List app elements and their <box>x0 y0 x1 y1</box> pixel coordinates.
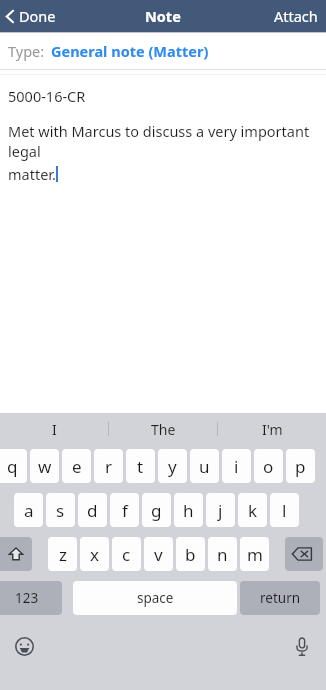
staticText: h <box>183 499 194 522</box>
button[interactable]: b <box>176 537 205 571</box>
button[interactable]: o <box>254 449 283 483</box>
button[interactable]: Shift <box>0 537 32 571</box>
staticText: e <box>72 455 82 478</box>
button[interactable]: d <box>78 493 107 527</box>
button[interactable]: I'm <box>218 413 326 445</box>
button[interactable]: Emoji <box>4 626 44 666</box>
button[interactable]: 123 <box>0 581 62 615</box>
staticText: t <box>137 455 144 478</box>
staticText: p <box>295 455 306 478</box>
staticText: w <box>38 455 52 478</box>
button[interactable]: h <box>174 493 203 527</box>
button[interactable]: Attach <box>266 0 326 32</box>
staticText: j <box>218 499 223 522</box>
staticText: b <box>185 543 196 566</box>
staticText: General note (Matter) <box>51 41 209 61</box>
button[interactable]: g <box>142 493 171 527</box>
button[interactable]: s <box>46 493 75 527</box>
staticText: g <box>151 499 162 522</box>
button[interactable]: n <box>208 537 237 571</box>
button[interactable]: i <box>222 449 251 483</box>
staticText: return <box>260 589 301 607</box>
staticText: a <box>24 499 34 522</box>
button[interactable]: w <box>30 449 59 483</box>
staticText: c <box>122 543 131 566</box>
staticText: l <box>282 499 287 522</box>
button[interactable]: Dictation <box>282 626 322 666</box>
staticText: i <box>234 455 239 478</box>
staticText: 5000-16-CR <box>8 86 86 106</box>
button[interactable]: Type: <box>0 33 326 69</box>
staticText: Met with Marcus to discuss a very import… <box>8 121 326 161</box>
staticText: Note <box>145 6 181 26</box>
staticText: z <box>59 543 67 566</box>
button[interactable]: y <box>158 449 187 483</box>
button[interactable]: j <box>206 493 235 527</box>
button[interactable]: f <box>110 493 139 527</box>
staticText: Done <box>19 6 56 26</box>
button[interactable]: k <box>238 493 267 527</box>
button[interactable]: e <box>62 449 91 483</box>
button[interactable]: x <box>80 537 109 571</box>
button[interactable]: z <box>48 537 77 571</box>
staticText: 123 <box>15 589 39 607</box>
staticText: The <box>151 420 176 439</box>
staticText: r <box>105 455 113 478</box>
staticText: x <box>90 543 99 566</box>
button[interactable]: return <box>240 581 320 615</box>
staticText: d <box>87 499 98 522</box>
button[interactable]: l <box>270 493 299 527</box>
button[interactable]: u <box>190 449 219 483</box>
button[interactable]: space <box>73 581 237 615</box>
staticText: n <box>217 543 228 566</box>
button[interactable]: q <box>0 449 27 483</box>
staticText: I <box>52 420 57 439</box>
staticText: v <box>154 543 163 566</box>
staticText: Attach <box>274 6 318 26</box>
staticText: s <box>56 499 65 522</box>
staticText: matter. <box>8 164 56 184</box>
staticText: q <box>7 455 18 478</box>
button[interactable]: I <box>0 413 108 445</box>
button[interactable]: The <box>109 413 217 445</box>
staticText: f <box>122 499 128 522</box>
button[interactable]: r <box>94 449 123 483</box>
staticText: Type: <box>8 41 45 61</box>
staticText: k <box>248 499 258 522</box>
staticText: y <box>168 455 177 478</box>
staticText: I'm <box>262 420 283 439</box>
staticText: m <box>247 543 263 566</box>
button[interactable]: t <box>126 449 155 483</box>
button[interactable]: p <box>286 449 315 483</box>
button[interactable]: Backspace <box>285 537 323 571</box>
button[interactable]: Done <box>0 0 64 32</box>
button[interactable]: m <box>240 537 269 571</box>
button[interactable]: c <box>112 537 141 571</box>
staticText: u <box>199 455 210 478</box>
staticText: space <box>137 589 174 607</box>
button[interactable]: v <box>144 537 173 571</box>
button[interactable]: a <box>14 493 43 527</box>
staticText: o <box>263 455 274 478</box>
